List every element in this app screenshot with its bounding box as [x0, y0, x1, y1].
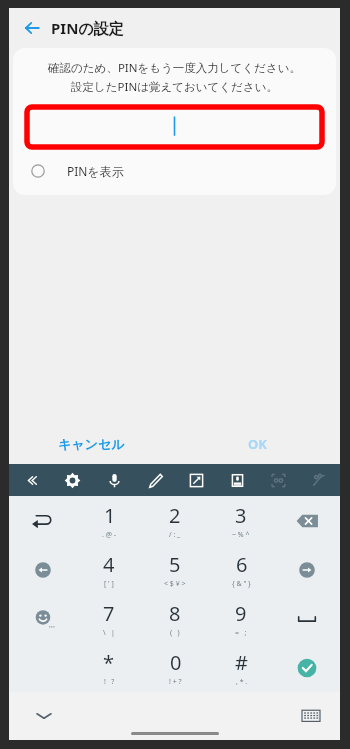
staticText: ! + ?: [169, 677, 182, 687]
staticText: 4: [103, 551, 115, 578]
button[interactable]: 0: [142, 643, 208, 692]
button[interactable]: Hide keyboard: [31, 703, 57, 729]
staticText: 2: [169, 502, 181, 529]
staticText: \ |: [103, 628, 115, 638]
staticText: 1: [104, 502, 116, 529]
staticText: OK: [248, 435, 267, 453]
staticText: ~ % ^: [232, 530, 250, 540]
staticText: 0: [170, 649, 182, 676]
staticText: ! ?: [104, 677, 115, 687]
button[interactable]: 5: [142, 545, 208, 594]
button[interactable]: Emoji2: [258, 464, 299, 496]
button[interactable]: #: [208, 643, 274, 692]
staticText: *: [103, 649, 115, 676]
button[interactable]: Clipboard: [217, 464, 258, 496]
button[interactable]: Translate: [299, 464, 340, 496]
staticText: 9: [235, 600, 247, 627]
staticText: / : _: [169, 530, 181, 540]
staticText: 5: [169, 551, 181, 578]
button[interactable]: 1: [76, 496, 142, 545]
staticText: 3: [235, 502, 247, 529]
button[interactable]: PINを表示: [13, 157, 336, 185]
button[interactable]: Cursor left: [9, 545, 76, 594]
button[interactable]: *: [76, 643, 142, 692]
staticText: { & " }: [232, 579, 251, 589]
button[interactable]: 7: [76, 594, 142, 643]
staticText: PINの設定: [51, 18, 124, 38]
button[interactable]: 9: [208, 594, 274, 643]
button[interactable]: Cursor right: [274, 545, 340, 594]
staticText: 確認のため、PINをもう一度入力してください。 設定したPINは覚えておいてくだ…: [19, 60, 330, 95]
button[interactable]: Back: [17, 13, 47, 43]
staticText: [ ' ]: [104, 579, 114, 589]
button[interactable]: キャンセル: [9, 424, 174, 464]
button[interactable]: Keyboard switch: [298, 703, 324, 729]
staticText: #: [235, 649, 248, 676]
button[interactable]: 6: [208, 545, 274, 594]
staticText: . @ -: [102, 530, 117, 540]
button[interactable]: 2: [142, 496, 208, 545]
button[interactable]: Space: [274, 594, 340, 643]
button[interactable]: Backspace: [274, 496, 340, 545]
button[interactable]: Collapse: [9, 464, 51, 496]
staticText: = ;: [235, 628, 247, 638]
staticText: キャンセル: [58, 436, 125, 452]
button[interactable]: Handwriting: [135, 464, 176, 496]
staticText: < $ ¥ >: [164, 579, 186, 589]
button[interactable]: Undo: [9, 496, 76, 545]
button[interactable]: OK: [174, 424, 340, 464]
staticText: 6: [236, 551, 248, 578]
button[interactable]: Emoji: [9, 594, 76, 643]
button[interactable]: 4: [76, 545, 142, 594]
button[interactable]: Float: [176, 464, 217, 496]
button[interactable]: 3: [208, 496, 274, 545]
staticText: 7: [103, 600, 115, 627]
button[interactable]: Enter: [274, 643, 340, 692]
button[interactable]: Settings: [51, 464, 93, 496]
staticText: , * .: [236, 677, 248, 687]
button[interactable]: 8: [142, 594, 208, 643]
staticText: 8: [169, 600, 181, 627]
staticText: ( ): [170, 628, 180, 638]
staticText: PINを表示: [67, 163, 124, 179]
button[interactable]: Voice: [93, 464, 135, 496]
